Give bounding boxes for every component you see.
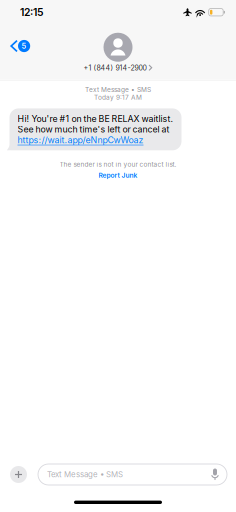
button[interactable]: Report Junk — [98, 171, 137, 179]
staticText: https://wait.app/eNnpCwWoaz — [17, 135, 143, 145]
staticText: 5 — [22, 41, 27, 50]
staticText: 12:15 — [20, 6, 44, 18]
button[interactable]: Contact details — [83, 33, 152, 72]
staticText: +1 (844) 914-2900 — [83, 64, 146, 72]
button[interactable]: Back to Messages — [0, 25, 36, 56]
staticText: Hi! You're #1 on the BE RELAX waitlist. — [17, 113, 173, 124]
staticText: Report Junk — [98, 171, 137, 179]
button[interactable]: Dictate — [211, 468, 219, 480]
staticText: Text Message • SMS — [85, 86, 151, 93]
button[interactable]: Add attachment — [10, 466, 27, 483]
staticText: See how much time's left or cancel at — [17, 124, 169, 135]
staticText: Today 9:17 AM — [94, 93, 142, 101]
staticText: The sender is not in your contact list. — [59, 160, 176, 168]
staticText: Text Message • SMS — [47, 470, 123, 479]
